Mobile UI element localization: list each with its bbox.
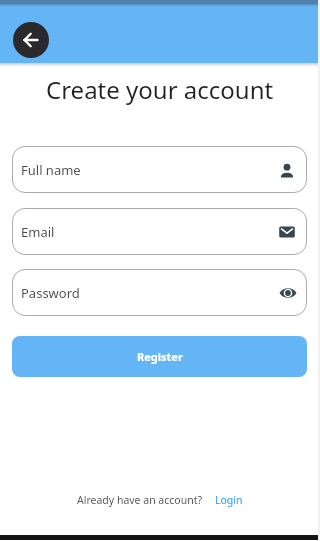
- staticText: Create your account: [46, 73, 274, 106]
- staticText: Already have an account?: [77, 493, 203, 507]
- staticText: Email: [21, 223, 55, 241]
- button[interactable]: Email: [12, 208, 307, 255]
- button[interactable]: Register: [12, 336, 307, 377]
- button[interactable]: Password: [12, 269, 307, 316]
- button[interactable]: [13, 22, 49, 58]
- staticText: Register: [137, 349, 183, 364]
- staticText: Password: [21, 284, 80, 302]
- button[interactable]: Login: [215, 493, 243, 507]
- staticText: Login: [215, 493, 243, 507]
- button[interactable]: Full name: [12, 146, 307, 193]
- staticText: Full name: [21, 161, 81, 179]
